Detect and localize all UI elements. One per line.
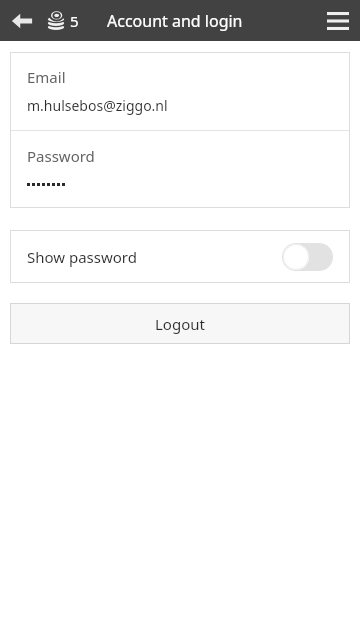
button[interactable]: Logout xyxy=(10,303,350,344)
button[interactable]: Password xyxy=(10,131,350,208)
button[interactable]: Menu xyxy=(316,0,360,41)
button[interactable]: Show password toggle xyxy=(282,243,333,271)
button[interactable]: Coins xyxy=(45,0,79,41)
staticText: Logout xyxy=(155,314,205,334)
staticText: 5 xyxy=(70,11,79,31)
button[interactable]: Back xyxy=(2,1,42,41)
staticText: Account and login xyxy=(107,10,243,32)
staticText: Show password xyxy=(27,247,137,267)
staticText: Password xyxy=(27,146,95,166)
staticText: m.hulsebos@ziggo.nl xyxy=(27,96,168,115)
staticText: Email xyxy=(27,67,66,87)
button[interactable]: Email xyxy=(10,52,350,130)
button[interactable]: Show password xyxy=(10,230,350,283)
